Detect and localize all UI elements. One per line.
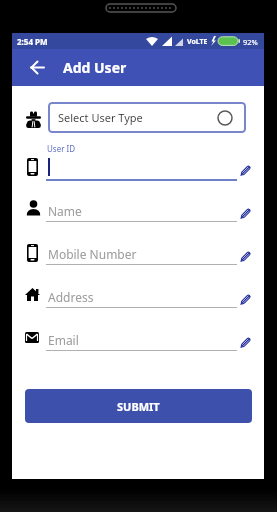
button[interactable] [240,165,251,177]
button[interactable]: Email [46,328,237,351]
staticText: SUBMIT [117,399,160,414]
button[interactable]: Name [46,199,237,222]
button[interactable] [240,337,251,349]
button[interactable] [30,60,45,75]
button[interactable]: Mobile Number [46,242,237,265]
staticText: VoLTE [187,37,208,47]
button[interactable]: Address [46,285,237,308]
staticText: Add User [63,58,127,77]
staticText: 2:54 PM [17,36,48,47]
button[interactable]: Select User Type [48,102,246,133]
button[interactable]: SUBMIT [25,389,252,423]
button[interactable] [240,294,251,306]
staticText: Email [48,332,79,348]
staticText: Mobile Number [48,246,137,262]
staticText: Name [48,203,82,219]
button[interactable] [240,208,251,220]
staticText: 92% [243,37,258,47]
staticText: Address [48,289,94,305]
staticText: Select User Type [58,110,143,125]
button[interactable] [46,155,237,181]
button[interactable] [240,251,251,263]
staticText: User ID [47,143,76,154]
